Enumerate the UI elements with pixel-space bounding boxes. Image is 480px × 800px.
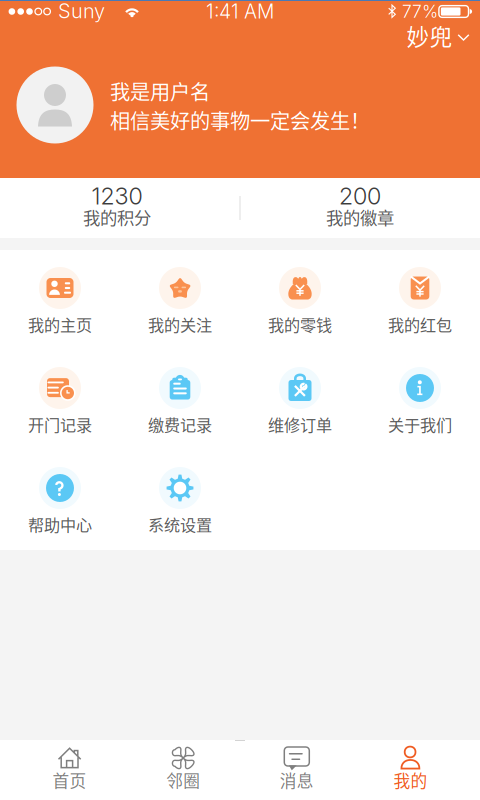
button[interactable]: 我的关注 (120, 250, 240, 350)
staticText: 首页 (53, 768, 87, 792)
staticText: 妙兜 (406, 19, 452, 52)
staticText: 消息 (280, 768, 314, 792)
staticText: 关于我们 (388, 412, 452, 436)
staticText: 我是用户名 (110, 76, 210, 106)
button[interactable]: 缴费记录 (120, 350, 240, 450)
button[interactable]: 开门记录 (0, 350, 120, 450)
staticText: Suny (58, 0, 105, 23)
button[interactable]: 维修订单 (240, 350, 360, 450)
button[interactable]: 妙兜 (398, 14, 477, 57)
button[interactable]: 消息 (240, 742, 354, 800)
staticText: 1230 (91, 182, 142, 210)
button[interactable]: 邻圈 (126, 742, 240, 800)
button[interactable]: 200 (240, 178, 480, 238)
staticText: 我的零钱 (268, 312, 332, 336)
staticText: 相信美好的事物一定会发生！ (110, 105, 370, 135)
button[interactable]: 关于我们 (360, 350, 480, 450)
staticText: 系统设置 (148, 512, 212, 536)
button[interactable]: 系统设置 (120, 450, 240, 550)
button[interactable]: 我的零钱 (240, 250, 360, 350)
staticText: 我的关注 (148, 312, 212, 336)
staticText: 维修订单 (268, 412, 332, 436)
staticText: 我的 (393, 768, 427, 792)
staticText: 我的主页 (28, 312, 92, 336)
button[interactable]: 首页 (13, 742, 126, 800)
staticText: 邻圈 (166, 768, 200, 792)
staticText: 开门记录 (28, 412, 92, 436)
button[interactable]: 帮助中心 (0, 450, 120, 550)
staticText: 77% (402, 1, 438, 22)
button[interactable]: 我的主页 (0, 250, 120, 350)
staticText: 我的徽章 (326, 204, 394, 230)
staticText: 我的红包 (388, 312, 452, 336)
button[interactable]: 我的 (354, 742, 467, 800)
staticText: 1:41 AM (206, 0, 274, 23)
staticText: 200 (339, 182, 381, 210)
staticText: 缴费记录 (148, 412, 212, 436)
button[interactable]: 我的红包 (360, 250, 480, 350)
staticText: 我的积分 (83, 204, 151, 230)
button[interactable]: 1230 (0, 178, 240, 238)
staticText: 帮助中心 (28, 512, 92, 536)
